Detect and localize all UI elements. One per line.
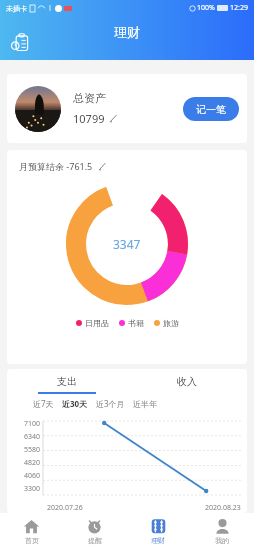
staticText: 6340 <box>24 432 41 442</box>
button[interactable]: 我的 <box>190 513 254 550</box>
staticText: 我的 <box>215 536 229 545</box>
staticText: 理财 <box>151 536 165 545</box>
button[interactable]: Edit budget <box>98 162 107 171</box>
staticText: 书籍 <box>128 318 144 328</box>
staticText: 理财 <box>114 24 140 40</box>
staticText: 2020.07.26 <box>47 503 83 513</box>
staticText: 首页 <box>25 536 39 545</box>
button[interactable]: 理财 <box>126 513 190 550</box>
staticText: 记一笔 <box>196 103 226 116</box>
staticText: 4820 <box>24 458 41 468</box>
staticText: 100% <box>197 3 215 13</box>
staticText: 2020.08.23 <box>205 503 241 513</box>
staticText: 4060 <box>24 471 41 481</box>
staticText: 近3个月 <box>96 398 125 409</box>
staticText: 近半年 <box>133 399 157 409</box>
staticText: 近7天 <box>33 398 54 409</box>
button[interactable]: 近3个月 <box>96 398 125 409</box>
staticText: 总资产 <box>73 91 106 105</box>
button[interactable]: 近30天 <box>62 398 88 409</box>
staticText: 月预算结余 -761.5 <box>19 160 93 172</box>
staticText: 日用品 <box>85 318 109 328</box>
button[interactable]: 提醒 <box>63 513 126 550</box>
button[interactable]: 近半年 <box>133 399 157 409</box>
button[interactable]: 首页 <box>0 513 63 550</box>
button[interactable]: Records <box>10 32 32 54</box>
button[interactable]: 近7天 <box>33 398 54 409</box>
staticText: 近30天 <box>62 398 88 409</box>
staticText: 3347 <box>113 236 141 252</box>
button[interactable]: 收入 <box>127 369 247 394</box>
staticText: 旅游 <box>163 318 179 328</box>
staticText: 10799 <box>73 111 105 126</box>
staticText: 未插卡 <box>6 4 27 13</box>
button[interactable]: 记一笔 <box>183 97 239 121</box>
staticText: 12:29 <box>230 3 248 13</box>
staticText: 3300 <box>24 484 41 494</box>
staticText: 提醒 <box>88 536 102 545</box>
staticText: 收入 <box>177 375 197 388</box>
staticText: 5580 <box>24 445 41 455</box>
staticText: 7100 <box>24 419 41 429</box>
staticText: 支出 <box>57 375 77 388</box>
button[interactable]: Edit total assets <box>109 114 118 123</box>
button[interactable]: 支出 <box>7 369 127 394</box>
